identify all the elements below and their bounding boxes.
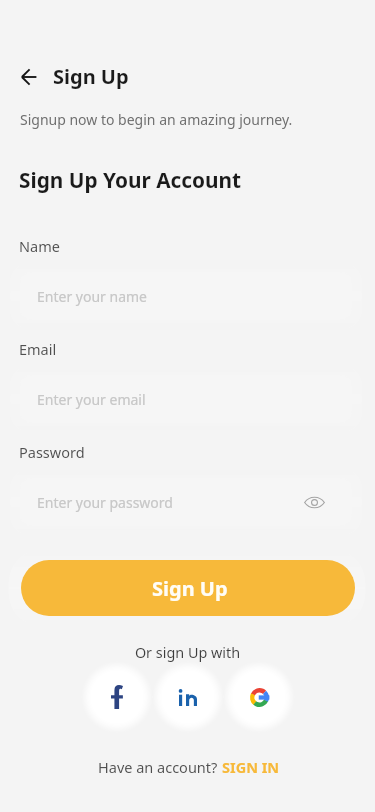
button[interactable]: Facebook xyxy=(92,672,142,722)
button[interactable]: Show password xyxy=(302,490,326,514)
staticText: Sign Up xyxy=(152,575,228,602)
button[interactable]: Sign Up xyxy=(21,560,355,616)
staticText: Have an account? xyxy=(98,757,222,777)
button[interactable]: LinkedIn xyxy=(163,672,213,722)
staticText: SIGN IN xyxy=(222,757,280,777)
staticText: Enter your password xyxy=(37,493,173,512)
button[interactable]: Enter your email xyxy=(20,375,352,423)
button[interactable]: Google xyxy=(234,672,284,722)
staticText: Name xyxy=(19,236,60,256)
staticText: Email xyxy=(19,339,57,359)
button[interactable]: Enter your password xyxy=(20,478,352,526)
staticText: Sign Up Your Account xyxy=(19,166,242,194)
staticText: Sign Up xyxy=(53,63,129,90)
button[interactable]: SIGN IN xyxy=(222,757,280,777)
button[interactable]: Enter your name xyxy=(20,272,352,320)
button[interactable]: Back xyxy=(13,63,45,91)
staticText: Enter your name xyxy=(37,287,147,306)
staticText: Enter your email xyxy=(37,390,146,409)
staticText: Or sign Up with xyxy=(0,643,375,663)
staticText: Password xyxy=(19,442,85,462)
staticText: Signup now to begin an amazing journey. xyxy=(20,110,293,129)
